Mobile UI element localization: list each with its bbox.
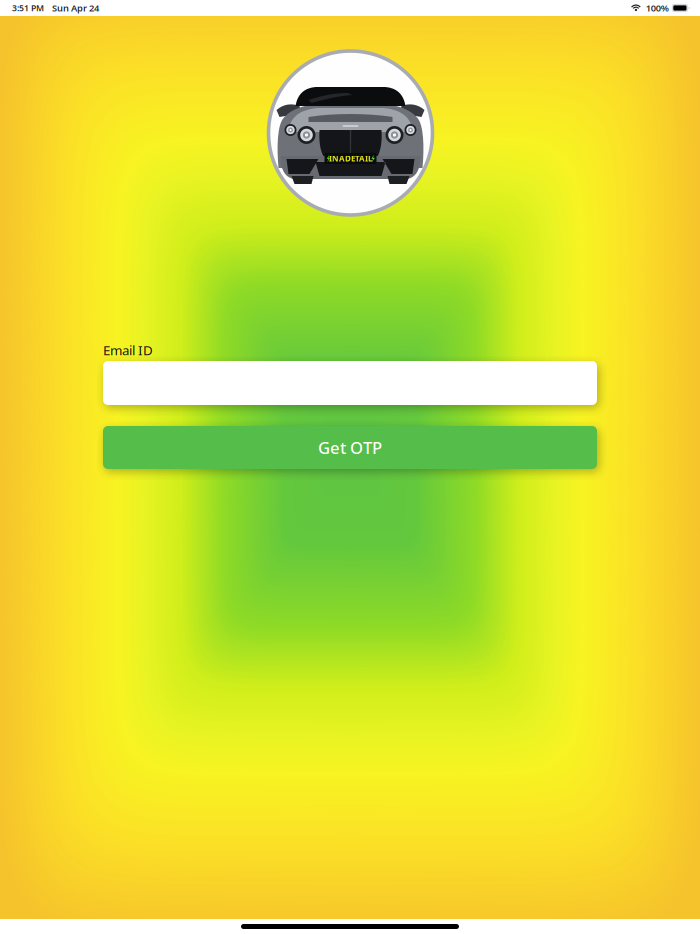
staticText: 100% — [646, 2, 669, 14]
staticText: Sun Apr 24 — [52, 2, 99, 14]
staticText: Get OTP — [318, 436, 382, 459]
button[interactable]: Get OTP — [103, 426, 597, 469]
staticText: INADETAIL — [329, 153, 372, 164]
staticText: 3:51 PM — [12, 2, 44, 14]
staticText: Email ID — [103, 341, 153, 359]
